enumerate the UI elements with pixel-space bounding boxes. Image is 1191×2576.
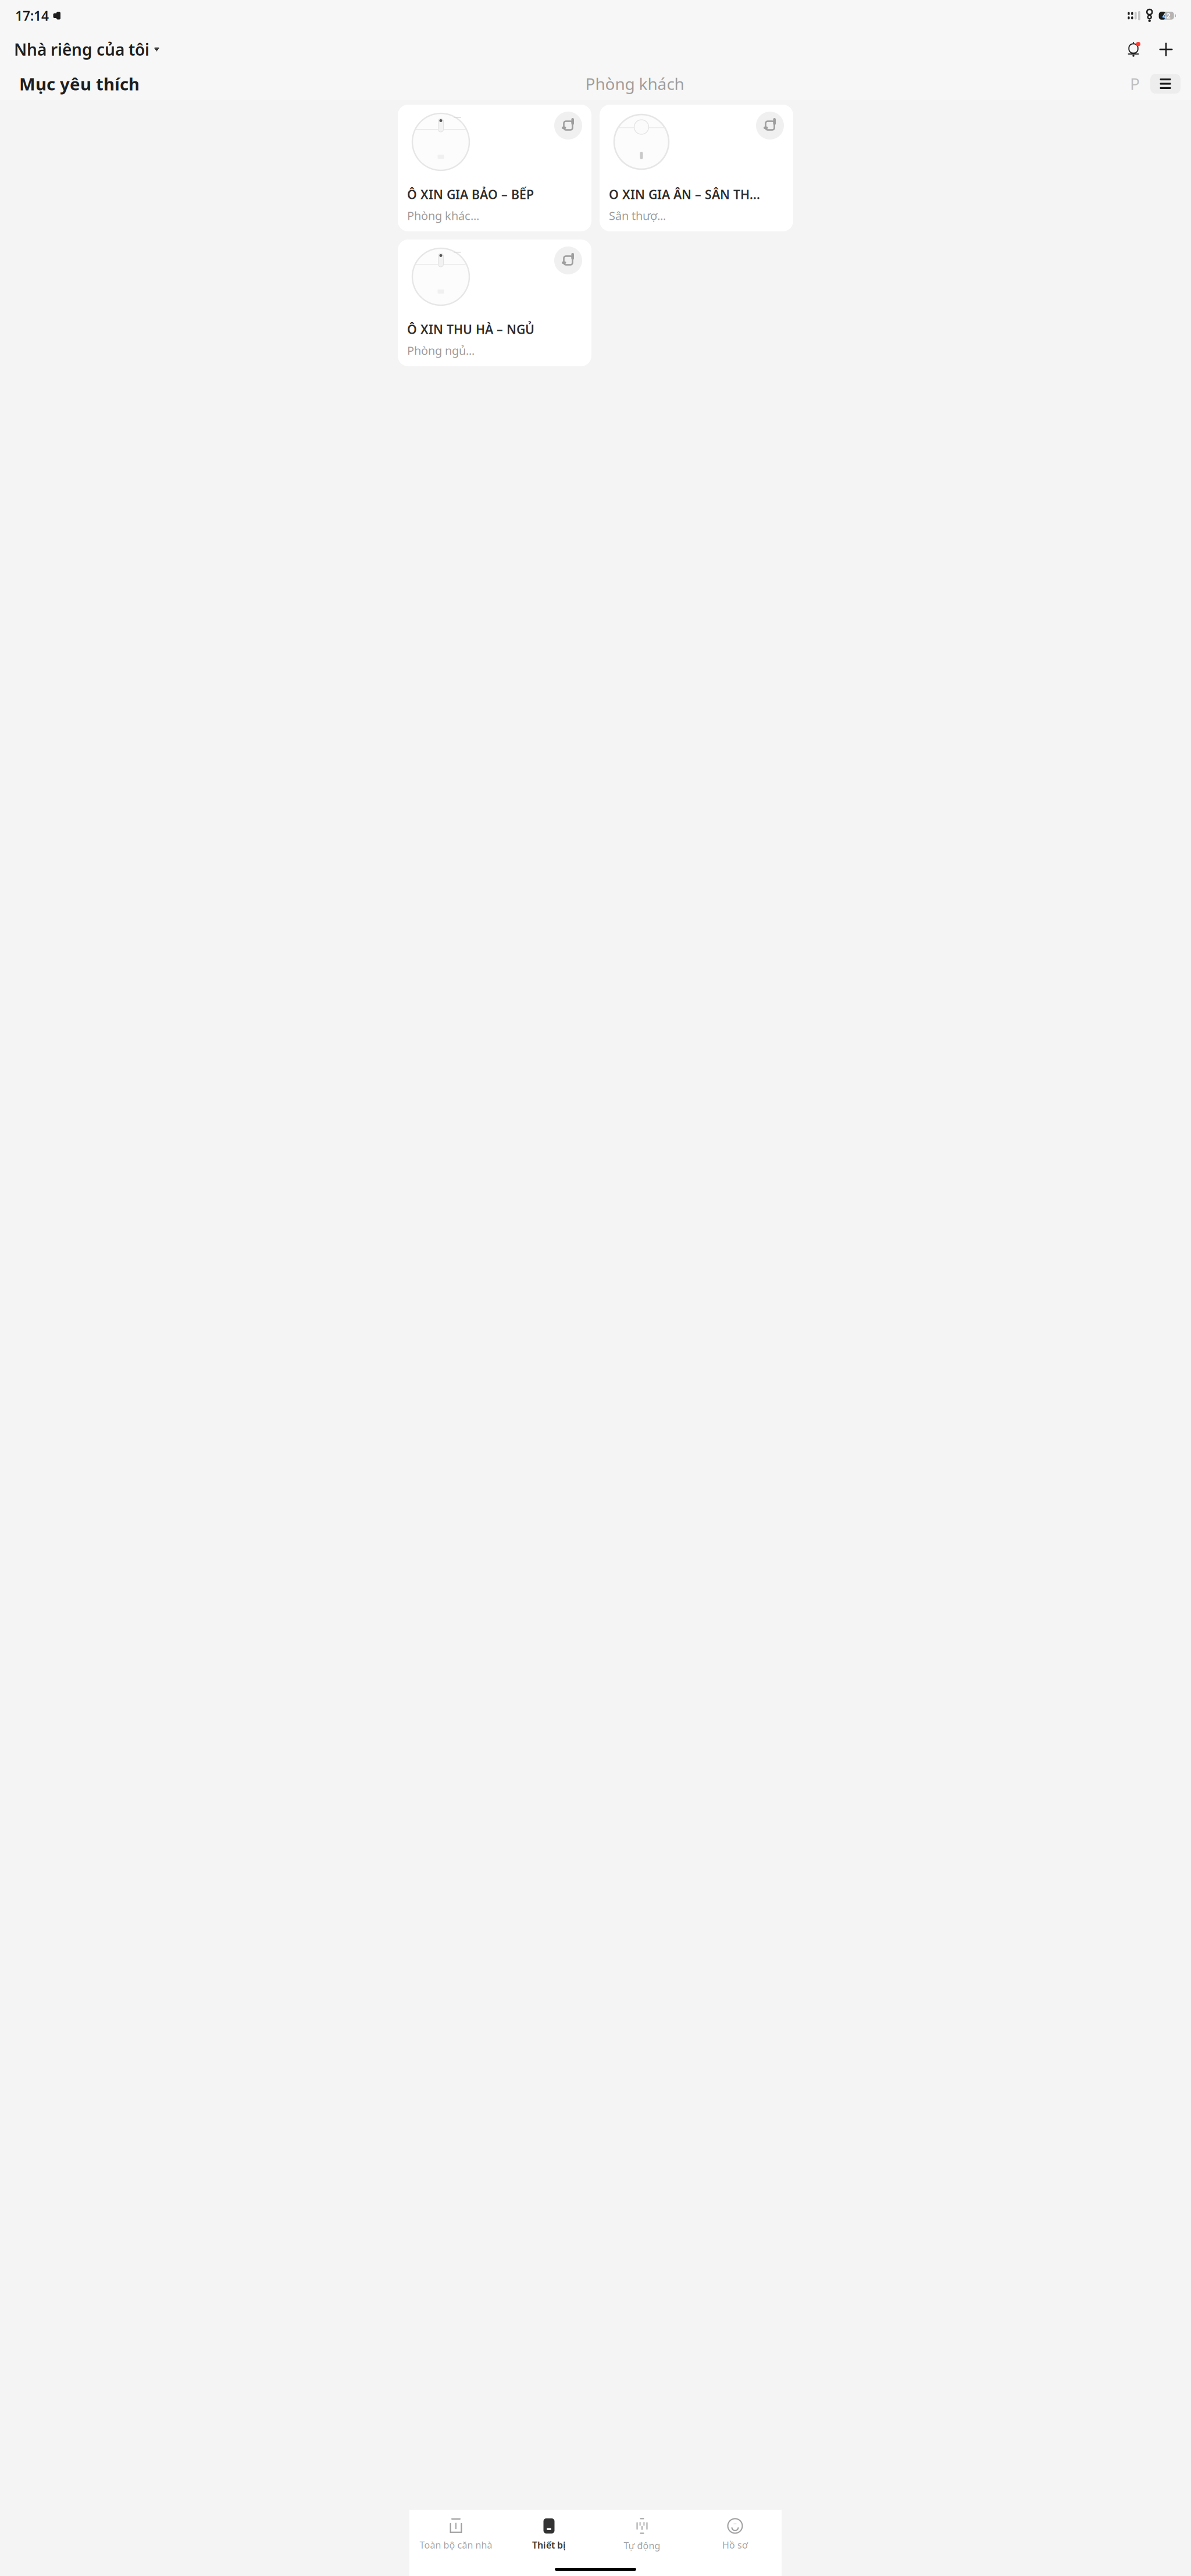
staticText: Phòng khác... xyxy=(407,208,479,223)
button[interactable]: Mục yêu thích xyxy=(19,69,140,99)
staticText: Ô XIN GIA BẢO – BẾP xyxy=(407,186,534,203)
button[interactable]: Notifications xyxy=(1122,38,1144,61)
staticText: Toàn bộ căn nhà xyxy=(420,2539,492,2551)
button[interactable]: Phòng khách xyxy=(585,69,684,98)
button[interactable]: Start cleaning xyxy=(554,112,582,140)
staticText: Hồ sơ xyxy=(722,2539,748,2551)
button[interactable]: Nhà riêng của tôi xyxy=(14,34,159,65)
staticText: 42 xyxy=(1162,11,1170,20)
staticText: O XIN GIA ÂN – SÂN TH... xyxy=(609,186,760,203)
button[interactable]: Start cleaning xyxy=(756,112,784,140)
staticText: Tự động xyxy=(624,2539,660,2552)
staticText: Mục yêu thích xyxy=(19,72,140,95)
button[interactable]: Ô XIN GIA BẢO – BẾP xyxy=(398,105,591,231)
staticText: Sân thượ... xyxy=(609,208,666,223)
button[interactable]: P xyxy=(1130,69,1140,98)
button[interactable]: Ô XIN THU HÀ – NGỦ xyxy=(398,240,591,366)
staticText: Nhà riêng của tôi xyxy=(14,39,149,60)
staticText: Phòng ngủ... xyxy=(407,343,475,358)
button[interactable]: Thiết bị xyxy=(502,2516,595,2554)
staticText: Thiết bị xyxy=(532,2539,566,2551)
button[interactable]: Hồ sơ xyxy=(689,2516,782,2554)
staticText: P xyxy=(1130,73,1140,95)
button[interactable]: All rooms xyxy=(1150,74,1181,94)
staticText: Ô XIN THU HÀ – NGỦ xyxy=(407,321,534,337)
button[interactable]: Tự động xyxy=(595,2516,689,2554)
staticText: Phòng khách xyxy=(585,73,684,95)
staticText: 17:14 xyxy=(15,7,49,24)
button[interactable]: Start cleaning xyxy=(554,246,582,274)
button[interactable]: Add device xyxy=(1144,38,1177,60)
button[interactable]: Toàn bộ căn nhà xyxy=(409,2516,502,2554)
button[interactable]: O XIN GIA ÂN – SÂN TH... xyxy=(600,105,793,231)
